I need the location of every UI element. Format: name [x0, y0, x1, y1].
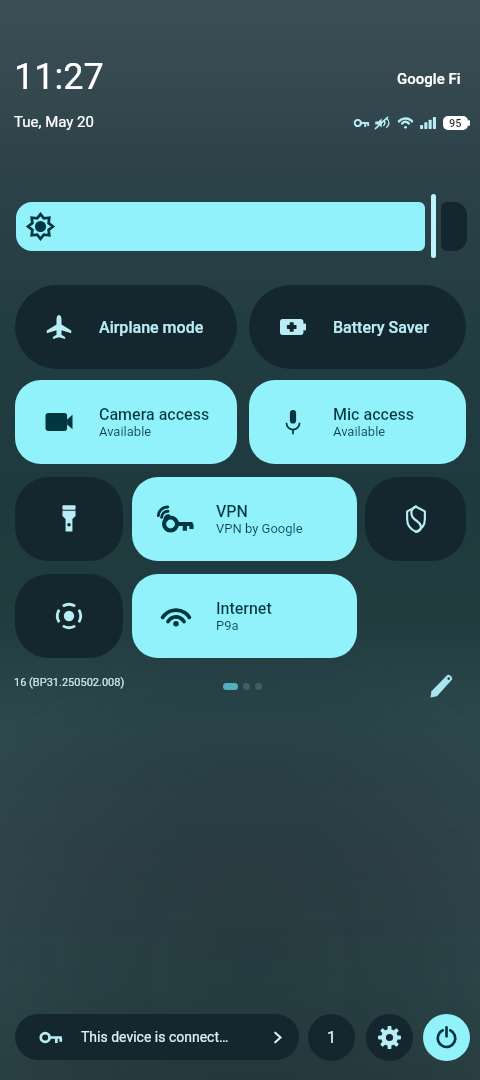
- staticText: VPN by Google: [216, 521, 303, 536]
- staticText: Camera access: [99, 405, 210, 424]
- staticText: Available: [99, 424, 152, 439]
- staticText: Airplane mode: [99, 318, 204, 337]
- button[interactable]: [16, 202, 425, 251]
- staticText: Tue, May 20: [14, 113, 94, 131]
- button[interactable]: Brightness: [441, 202, 467, 251]
- button[interactable]: Flashlight: [15, 477, 123, 561]
- button[interactable]: Location: [15, 574, 123, 658]
- staticText: Mic access: [333, 405, 415, 424]
- button[interactable]: Security: [365, 477, 466, 561]
- staticText: Battery Saver: [333, 318, 429, 337]
- staticText: Google Fi: [397, 70, 461, 88]
- staticText: P9a: [216, 618, 239, 633]
- staticText: Available: [333, 424, 386, 439]
- staticText: 1: [327, 1028, 336, 1047]
- button[interactable]: This device is connect…: [15, 1014, 299, 1060]
- button[interactable]: VPN: [132, 477, 357, 561]
- staticText: 11:27: [14, 56, 104, 98]
- button[interactable]: Internet: [132, 574, 357, 658]
- button[interactable]: Edit tiles: [423, 667, 461, 705]
- button[interactable]: Mic access: [249, 380, 466, 464]
- button[interactable]: Camera access: [15, 380, 237, 464]
- staticText: 95: [449, 117, 462, 130]
- staticText: This device is connect…: [81, 1029, 229, 1045]
- staticText: 16 (BP31.250502.008): [14, 676, 125, 689]
- button[interactable]: Switch user: [308, 1014, 355, 1061]
- staticText: VPN: [216, 502, 248, 521]
- button[interactable]: Battery Saver: [249, 285, 466, 369]
- staticText: Internet: [216, 599, 272, 618]
- button[interactable]: Settings: [366, 1014, 413, 1061]
- button[interactable]: Power: [423, 1014, 470, 1061]
- button[interactable]: Airplane mode: [15, 285, 237, 369]
